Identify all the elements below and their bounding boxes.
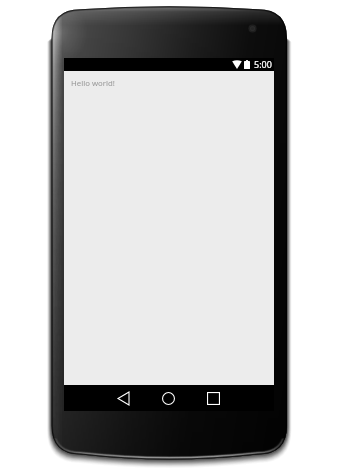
staticText: Hello world!	[71, 78, 115, 89]
button[interactable]: Recent apps	[200, 385, 226, 411]
button[interactable]: Back	[110, 385, 136, 411]
staticText: 5:00	[254, 58, 272, 70]
button[interactable]: Home	[155, 385, 181, 411]
